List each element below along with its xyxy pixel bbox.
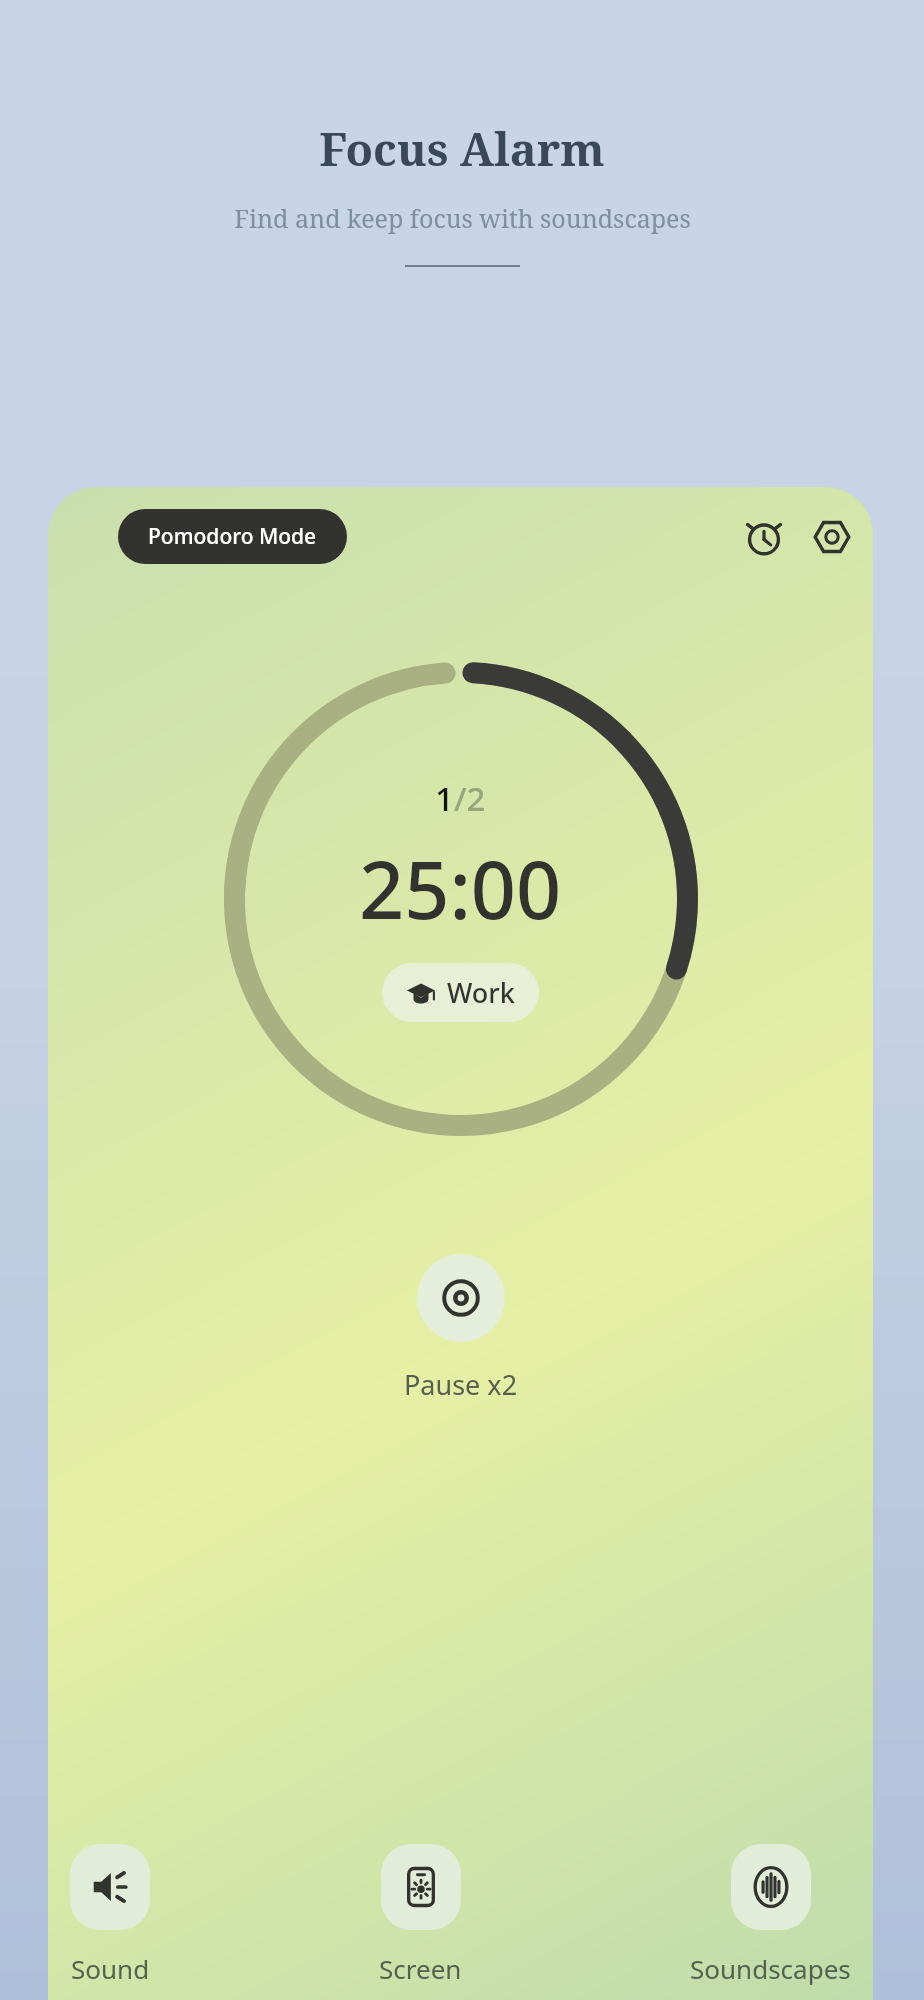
button[interactable]: Sound [70,1844,150,1986]
button[interactable]: Alarm [737,510,791,564]
staticText: Pause x2 [404,1366,518,1403]
button[interactable]: Work [382,963,539,1022]
button[interactable]: Pause [417,1254,505,1342]
button[interactable]: Screen [379,1844,462,1986]
button[interactable]: Pomodoro Mode [118,509,347,564]
button[interactable]: Soundscapes [690,1844,851,1986]
staticText: Soundscapes [690,1951,851,1986]
staticText: 25:00 [359,835,562,943]
staticText: Find and keep focus with soundscapes [234,201,691,235]
staticText: Work [447,974,515,1011]
staticText: Screen [379,1951,462,1986]
staticText: Sound [71,1951,150,1986]
staticText: Focus Alarm [319,118,605,179]
staticText: 1/2 [435,776,486,821]
button[interactable]: Settings [805,510,859,564]
staticText: Pomodoro Mode [148,522,317,551]
